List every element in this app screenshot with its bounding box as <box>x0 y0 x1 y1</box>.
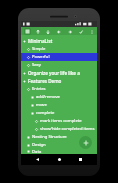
button[interactable]: move <box>21 101 97 109</box>
button[interactable]: Menu <box>23 27 31 35</box>
button[interactable]: mark items complete <box>21 117 97 125</box>
staticText: Powerful <box>32 54 50 60</box>
button[interactable]: MinimaList <box>21 37 97 45</box>
staticText: Entries <box>32 86 46 92</box>
button[interactable]: Back <box>32 154 43 165</box>
button[interactable]: Simple <box>21 45 97 53</box>
staticText: Organize your life like a minimalist <box>28 70 97 76</box>
button[interactable]: Nesting Structure <box>21 133 97 141</box>
button[interactable]: Data <box>21 149 97 154</box>
button[interactable]: Done <box>77 28 84 35</box>
button[interactable]: Home <box>54 154 65 165</box>
button[interactable]: Move down <box>44 28 51 35</box>
staticText: Sexy <box>32 62 41 68</box>
button[interactable]: Features Demo <box>21 77 97 85</box>
button[interactable]: Organize your life like a minimalist <box>21 69 97 77</box>
button[interactable]: Indent <box>66 28 73 35</box>
button[interactable]: Sexy <box>21 61 97 69</box>
staticText: Nesting Structure <box>32 134 67 140</box>
button[interactable]: More options <box>88 28 95 35</box>
button[interactable]: show/hide completed items <box>21 125 97 133</box>
button[interactable]: add/remove <box>21 93 97 101</box>
staticText: MinimaList <box>28 38 53 44</box>
button[interactable]: Add item <box>79 136 92 149</box>
staticText: Features Demo <box>28 78 62 84</box>
button[interactable]: complete <box>21 109 97 117</box>
staticText: complete <box>36 110 55 116</box>
staticText: mark items complete <box>40 118 82 124</box>
button[interactable]: Move up <box>34 28 41 35</box>
staticText: Simple <box>32 46 46 52</box>
staticText: add/remove <box>36 94 60 100</box>
button[interactable]: Design <box>21 141 97 149</box>
staticText: move <box>36 102 47 108</box>
staticText: Data <box>32 149 42 154</box>
staticText: Design <box>32 142 46 148</box>
staticText: show/hide completed items <box>40 126 95 132</box>
button[interactable]: Entries <box>21 85 97 93</box>
button[interactable]: Recents <box>75 154 86 165</box>
button[interactable]: Powerful <box>21 53 97 61</box>
button[interactable]: Outdent <box>55 28 62 35</box>
